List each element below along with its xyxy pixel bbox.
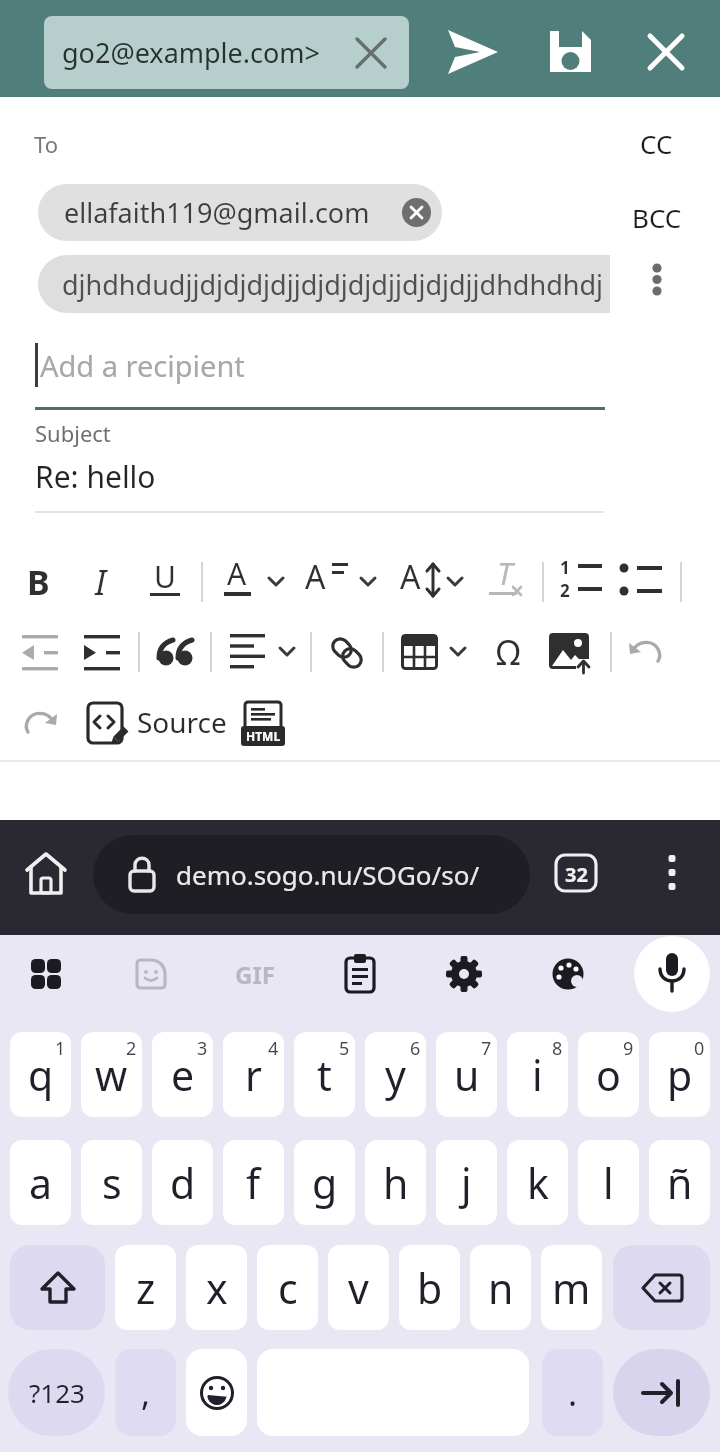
button[interactable]: c <box>257 1245 318 1330</box>
button[interactable] <box>336 950 384 998</box>
staticText: m <box>552 1260 591 1316</box>
button[interactable]: l <box>578 1140 639 1225</box>
staticText: 5 <box>339 1036 350 1060</box>
staticText: 32 <box>565 861 588 888</box>
button[interactable] <box>634 20 698 84</box>
button[interactable] <box>127 950 175 998</box>
button[interactable]: djhdhdudjjdjdjdjdjjdjdjdjdjjdjdjdjjdhdhd… <box>38 255 610 313</box>
button[interactable]: i <box>507 1032 568 1117</box>
button[interactable]: w <box>81 1032 142 1117</box>
button[interactable]: o <box>578 1032 639 1117</box>
button[interactable] <box>328 634 366 672</box>
button[interactable] <box>648 848 696 900</box>
button[interactable]: 1 <box>558 558 604 606</box>
staticText: a <box>29 1155 53 1211</box>
button[interactable]: Ω <box>486 625 530 679</box>
button[interactable] <box>440 20 504 84</box>
button[interactable] <box>22 708 58 738</box>
button[interactable]: 32 <box>551 852 601 896</box>
button[interactable]: p <box>649 1032 710 1117</box>
staticText: f <box>246 1155 261 1211</box>
button[interactable]: f <box>223 1140 284 1225</box>
button[interactable]: e <box>152 1032 213 1117</box>
button[interactable]: ellafaith119@gmail.com <box>38 184 442 241</box>
staticText: g <box>312 1155 338 1211</box>
staticText: A <box>400 555 421 599</box>
button[interactable] <box>22 950 70 998</box>
staticText: 8 <box>552 1036 563 1060</box>
staticText: r <box>245 1047 262 1103</box>
button[interactable]: T <box>485 546 525 600</box>
staticText: Ω <box>496 629 521 675</box>
button[interactable]: A <box>295 550 335 604</box>
button[interactable] <box>86 701 130 745</box>
staticText: A <box>227 553 247 594</box>
button[interactable] <box>20 848 72 900</box>
button[interactable]: ?123 <box>8 1349 105 1436</box>
staticText: ?123 <box>29 1375 85 1410</box>
button[interactable]: a <box>10 1140 71 1225</box>
button[interactable]: b <box>399 1245 460 1330</box>
staticText: HTML <box>246 728 281 744</box>
button[interactable]: v <box>328 1245 389 1330</box>
button[interactable]: y <box>365 1032 426 1117</box>
staticText: I <box>95 559 107 605</box>
button[interactable] <box>401 634 439 670</box>
button[interactable]: A <box>390 550 430 604</box>
button[interactable] <box>538 20 602 84</box>
staticText: U <box>154 556 176 597</box>
staticText: n <box>488 1260 514 1316</box>
button[interactable]: k <box>507 1140 568 1225</box>
button[interactable]: U <box>145 549 185 603</box>
button[interactable]: m <box>541 1245 602 1330</box>
button[interactable]: d <box>152 1140 213 1225</box>
button[interactable]: BCC <box>615 187 699 247</box>
button[interactable]: z <box>115 1245 176 1330</box>
staticText: d <box>170 1155 196 1211</box>
button[interactable]: Add a recipient <box>34 330 614 400</box>
button[interactable]: GIF <box>231 950 279 998</box>
button[interactable]: t <box>294 1032 355 1117</box>
button[interactable]: HTML <box>240 700 286 748</box>
button[interactable]: CC <box>620 113 692 173</box>
button[interactable]: j <box>436 1140 497 1225</box>
button[interactable] <box>618 558 664 606</box>
button[interactable]: I <box>81 552 121 612</box>
button[interactable]: s <box>81 1140 142 1225</box>
staticText: z <box>136 1260 156 1316</box>
button[interactable] <box>20 634 60 672</box>
button[interactable] <box>613 1245 710 1330</box>
button[interactable]: h <box>365 1140 426 1225</box>
button[interactable] <box>10 1245 105 1330</box>
staticText: GIF <box>235 958 275 991</box>
button[interactable] <box>158 636 196 668</box>
button[interactable]: go2@example.com> <box>44 16 409 89</box>
staticText: A <box>305 555 326 599</box>
button[interactable] <box>549 633 591 673</box>
button[interactable]: demo.sogo.nu/SOGo/so/sogo <box>93 835 530 914</box>
button[interactable] <box>82 634 122 672</box>
button[interactable]: B <box>18 552 58 612</box>
button[interactable] <box>634 262 680 308</box>
button[interactable] <box>613 1349 710 1436</box>
button[interactable]: A <box>217 546 257 600</box>
staticText: c <box>278 1260 298 1316</box>
button[interactable]: , <box>115 1349 176 1436</box>
button[interactable]: ñ <box>649 1140 710 1225</box>
button[interactable]: n <box>470 1245 531 1330</box>
button[interactable] <box>544 950 592 998</box>
staticText: j <box>461 1155 472 1211</box>
staticText: B <box>27 559 50 605</box>
button[interactable] <box>634 936 710 1012</box>
button[interactable] <box>230 634 266 670</box>
button[interactable] <box>628 637 664 667</box>
button[interactable]: . <box>542 1349 603 1436</box>
button[interactable]: x <box>186 1245 247 1330</box>
button[interactable]: q <box>10 1032 71 1117</box>
button[interactable]: u <box>436 1032 497 1117</box>
button[interactable] <box>186 1349 247 1436</box>
button[interactable] <box>440 950 488 998</box>
button[interactable]: g <box>294 1140 355 1225</box>
button[interactable]: r <box>223 1032 284 1117</box>
